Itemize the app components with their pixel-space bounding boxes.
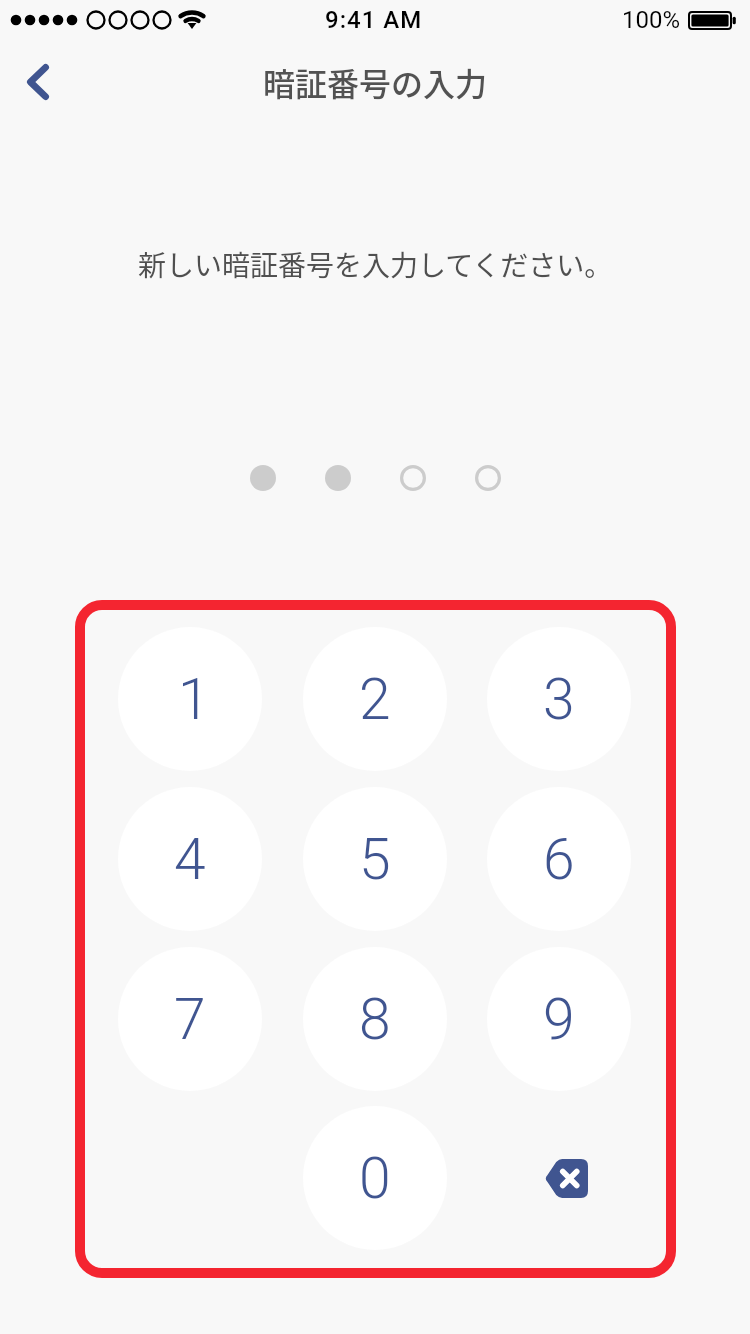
staticText: 9 xyxy=(543,986,575,1053)
staticText: 暗証番号の入力 xyxy=(263,59,488,105)
button[interactable]: 6 xyxy=(487,787,631,931)
staticText: 新しい暗証番号を入力してください。 xyxy=(138,244,613,285)
staticText: 2 xyxy=(359,666,391,733)
button[interactable]: 3 xyxy=(487,627,631,771)
staticText: 100% xyxy=(622,6,681,34)
button[interactable]: 8 xyxy=(303,947,447,1091)
button[interactable]: Back xyxy=(8,52,68,112)
staticText: 6 xyxy=(543,826,575,893)
staticText: 9:41 AM xyxy=(325,6,423,34)
staticText: 1 xyxy=(178,666,210,733)
staticText: 4 xyxy=(174,826,206,893)
button[interactable]: Backspace xyxy=(487,1106,631,1250)
staticText: 0 xyxy=(359,1145,391,1212)
button[interactable]: 4 xyxy=(118,787,262,931)
button[interactable]: 2 xyxy=(303,627,447,771)
staticText: 3 xyxy=(543,666,575,733)
button[interactable]: 7 xyxy=(118,947,262,1091)
staticText: 5 xyxy=(359,826,391,893)
button[interactable]: 9 xyxy=(487,947,631,1091)
staticText: 8 xyxy=(359,986,391,1053)
button[interactable]: 0 xyxy=(303,1106,447,1250)
button[interactable]: 5 xyxy=(303,787,447,931)
staticText: 7 xyxy=(174,986,206,1053)
button[interactable]: 1 xyxy=(118,627,262,771)
